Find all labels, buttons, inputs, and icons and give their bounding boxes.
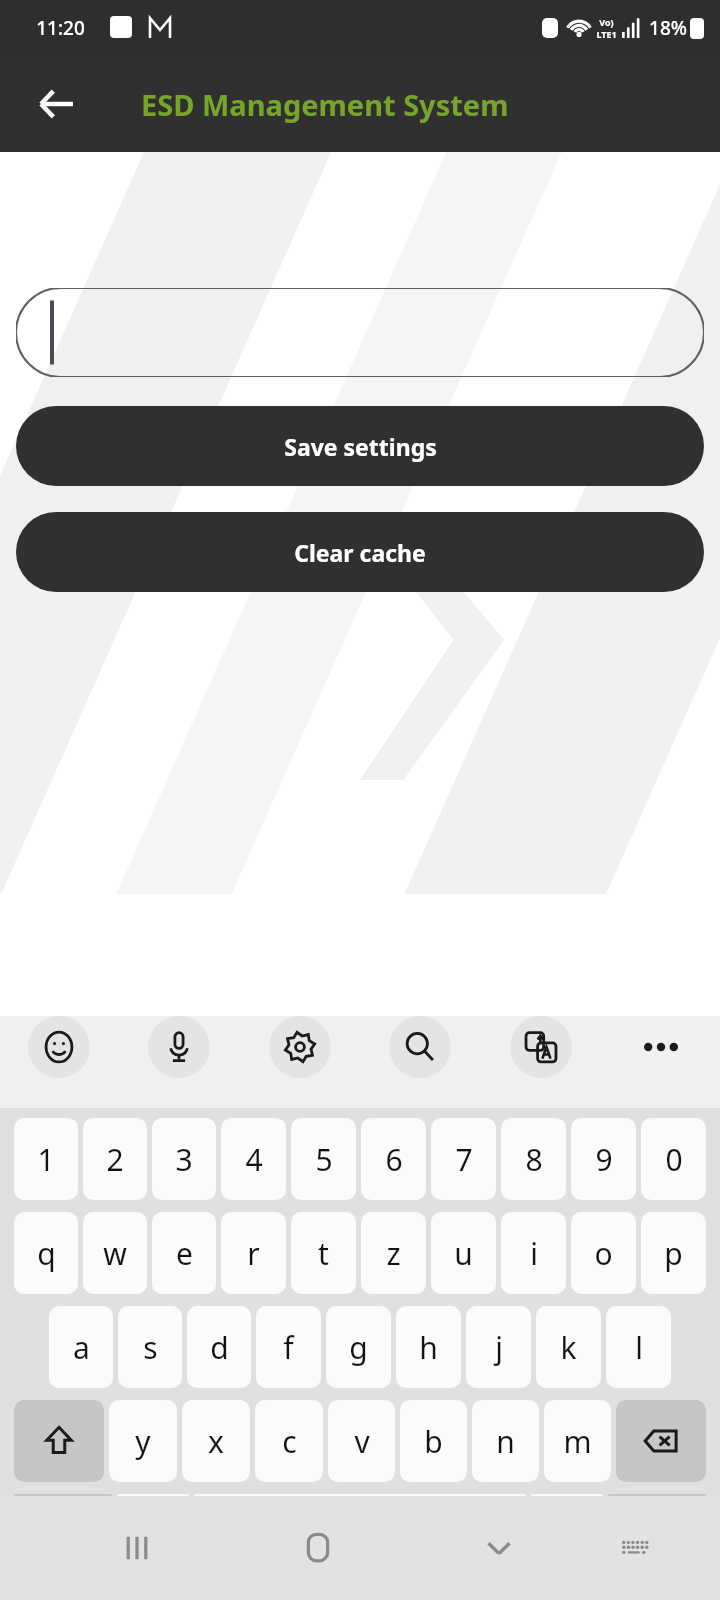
staticText: u [454, 1233, 473, 1274]
button[interactable]: Switch keyboard [603, 1516, 667, 1580]
staticText: j [495, 1327, 503, 1368]
button[interactable] [16, 288, 704, 377]
button[interactable]: t [291, 1212, 356, 1294]
button[interactable]: y [109, 1400, 177, 1482]
button[interactable]: a [49, 1306, 113, 1388]
button[interactable]: c [255, 1400, 323, 1482]
staticText: 2 [106, 1139, 124, 1180]
button[interactable]: x [182, 1400, 250, 1482]
button[interactable]: 9 [571, 1118, 636, 1200]
button[interactable]: 7 [431, 1118, 496, 1200]
button[interactable]: v [328, 1400, 395, 1482]
staticText: i [530, 1233, 538, 1274]
button[interactable]: Home [286, 1516, 350, 1580]
staticText: v [354, 1421, 370, 1462]
button[interactable]: 4 [221, 1118, 286, 1200]
staticText: Vo) [599, 16, 614, 28]
staticText: k [560, 1327, 577, 1368]
staticText: 18% [649, 15, 687, 41]
button[interactable]: b [400, 1400, 467, 1482]
button[interactable]: i [501, 1212, 566, 1294]
button[interactable]: Recents [105, 1516, 169, 1580]
button[interactable]: Keyboard settings [269, 1016, 331, 1078]
button[interactable]: Clear cache [16, 512, 704, 592]
button[interactable]: Backspace [616, 1400, 706, 1482]
button[interactable]: Translate [510, 1016, 572, 1078]
staticText: w [103, 1233, 127, 1274]
staticText: t [318, 1233, 329, 1274]
staticText: p [664, 1233, 683, 1274]
button[interactable]: 8 [501, 1118, 566, 1200]
button[interactable]: k [536, 1306, 601, 1388]
staticText: q [37, 1233, 56, 1274]
staticText: 8 [525, 1139, 543, 1180]
button[interactable]: s [118, 1306, 182, 1388]
staticText: 4 [245, 1139, 263, 1180]
button[interactable]: e [152, 1212, 216, 1294]
staticText: d [210, 1327, 229, 1368]
staticText: 6 [385, 1139, 403, 1180]
button[interactable]: l [606, 1306, 671, 1388]
staticText: s [143, 1327, 158, 1368]
button[interactable]: w [83, 1212, 147, 1294]
staticText: 3 [175, 1139, 193, 1180]
button[interactable]: Hide keyboard [467, 1516, 531, 1580]
button[interactable]: j [466, 1306, 531, 1388]
staticText: ESD Management System [141, 85, 509, 124]
staticText: o [594, 1233, 613, 1274]
button[interactable]: d [187, 1306, 251, 1388]
button[interactable]: f [256, 1306, 321, 1388]
button[interactable]: Shift [14, 1400, 104, 1482]
button[interactable]: Emoji [28, 1016, 90, 1078]
staticText: 0 [665, 1139, 683, 1180]
staticText: a [73, 1327, 90, 1368]
button[interactable]: o [571, 1212, 636, 1294]
button[interactable]: 1 [14, 1118, 78, 1200]
button[interactable]: g [326, 1306, 391, 1388]
staticText: l [635, 1327, 643, 1368]
button[interactable]: p [641, 1212, 706, 1294]
button[interactable]: 2 [83, 1118, 147, 1200]
button[interactable]: r [221, 1212, 286, 1294]
button[interactable]: u [431, 1212, 496, 1294]
staticText: 1 [37, 1139, 55, 1180]
staticText: x [208, 1421, 224, 1462]
staticText: e [176, 1233, 193, 1274]
button[interactable]: 0 [641, 1118, 706, 1200]
staticText: g [349, 1327, 368, 1368]
staticText: LTE1 [596, 28, 617, 40]
staticText: Save settings [284, 431, 437, 462]
staticText: m [563, 1421, 592, 1462]
button[interactable]: More options [630, 1016, 692, 1078]
staticText: b [424, 1421, 443, 1462]
staticText: 7 [455, 1139, 473, 1180]
button[interactable]: h [396, 1306, 461, 1388]
button[interactable]: Voice input [148, 1016, 210, 1078]
button[interactable]: Back [22, 70, 90, 138]
button[interactable]: 3 [152, 1118, 216, 1200]
button[interactable]: Search [389, 1016, 451, 1078]
staticText: 11:20 [36, 15, 85, 41]
button[interactable]: n [472, 1400, 539, 1482]
staticText: y [135, 1421, 151, 1462]
button[interactable]: m [544, 1400, 611, 1482]
staticText: h [419, 1327, 438, 1368]
button[interactable]: Save settings [16, 406, 704, 486]
staticText: n [496, 1421, 515, 1462]
button[interactable]: 6 [361, 1118, 426, 1200]
staticText: Clear cache [294, 537, 426, 568]
button[interactable]: q [14, 1212, 78, 1294]
button[interactable]: 5 [291, 1118, 356, 1200]
staticText: r [247, 1233, 260, 1274]
button[interactable]: z [361, 1212, 426, 1294]
